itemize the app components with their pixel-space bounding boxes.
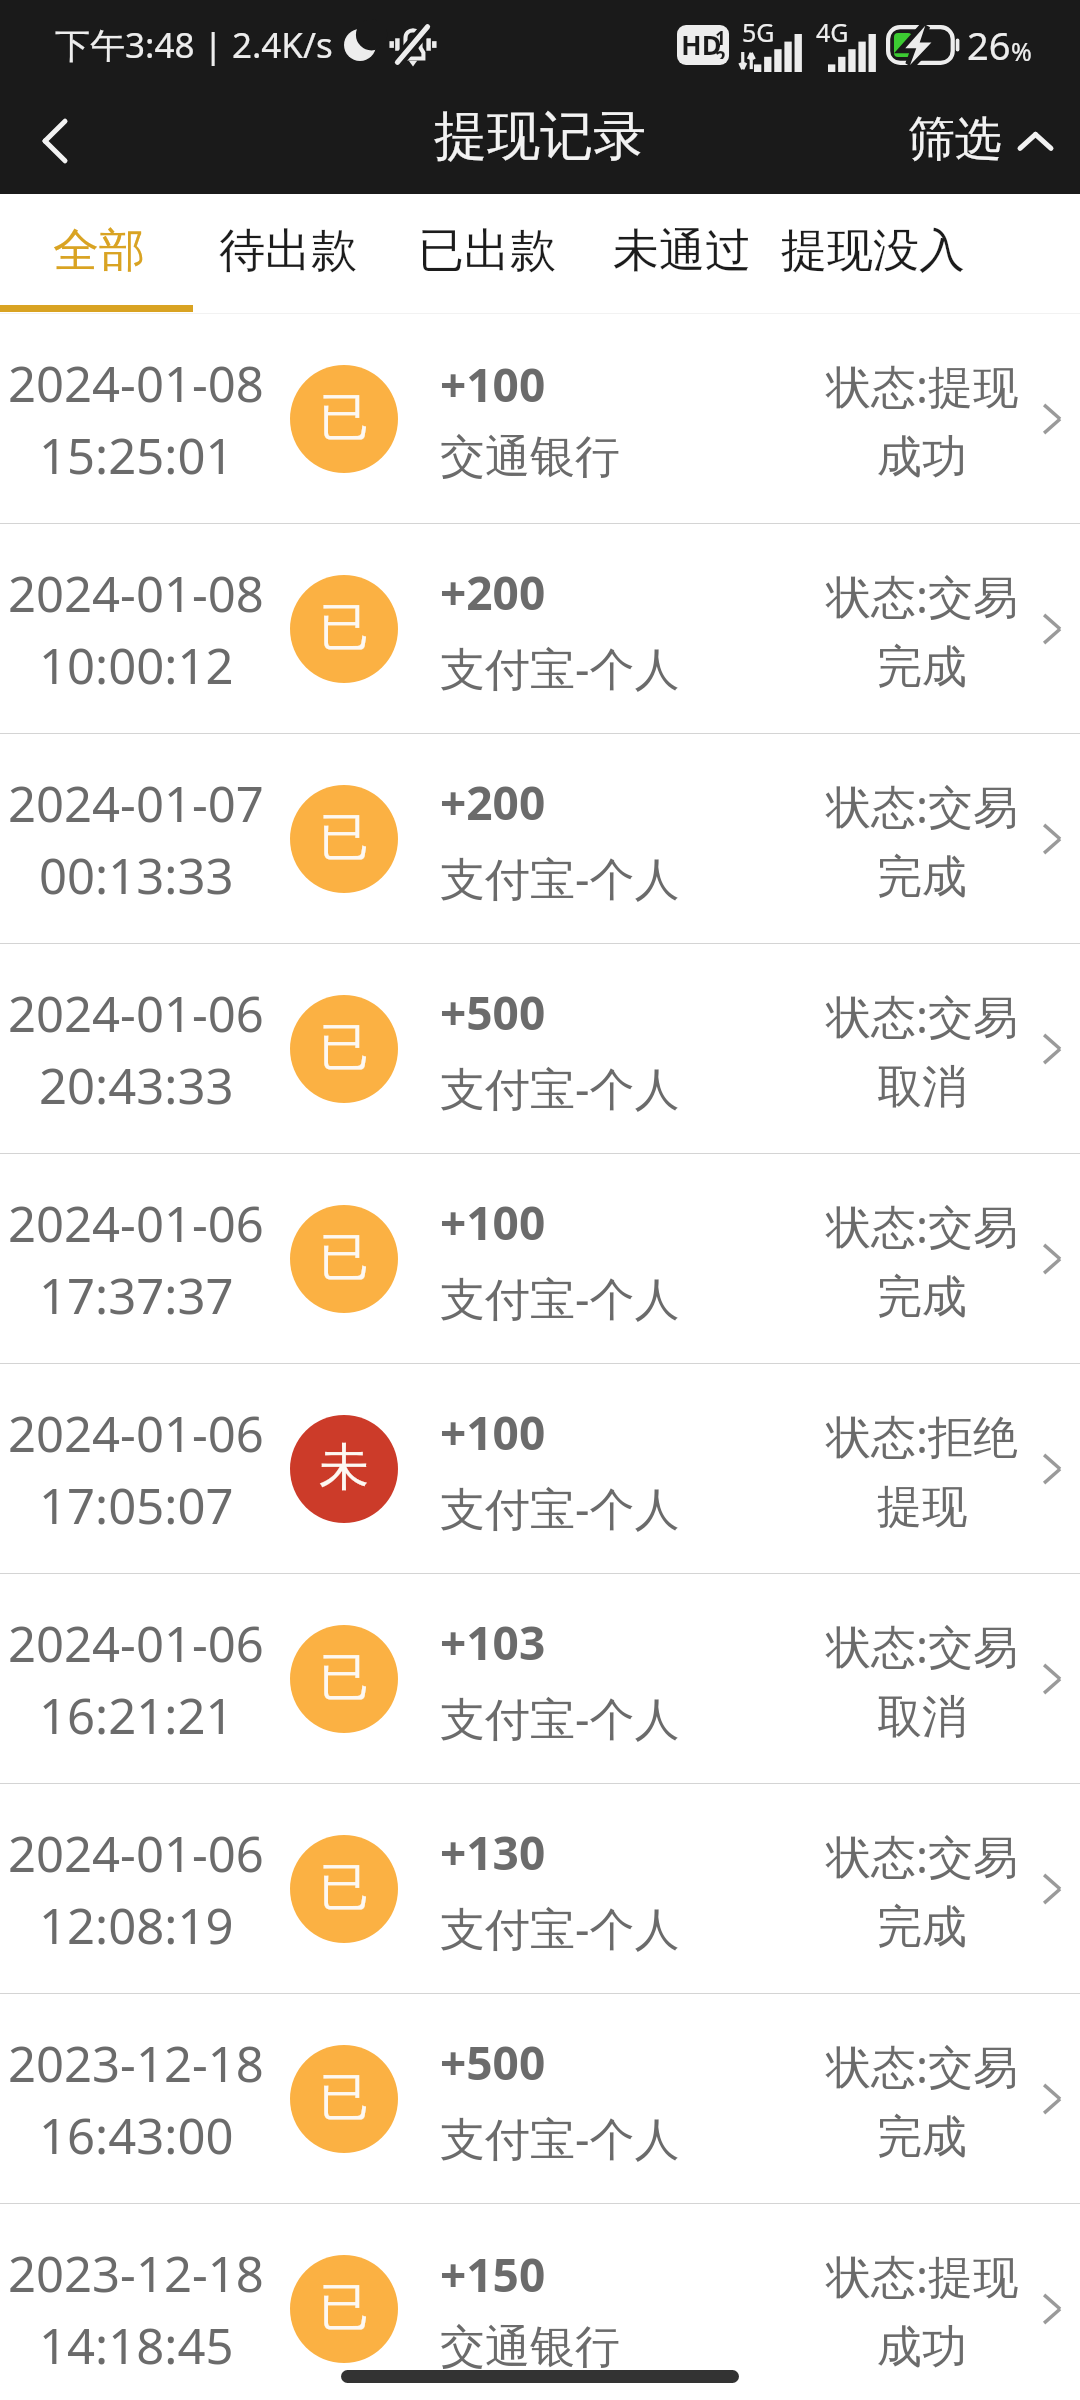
staticText: 状态:交易 (826, 985, 1019, 1046)
button[interactable]: 2024-01-06 (0, 1574, 1080, 1783)
staticText: 支付宝-个人 (440, 637, 680, 698)
staticText: 2024-01-06 (8, 1190, 264, 1257)
staticText: 2024-01-08 (8, 560, 264, 627)
staticText: 2024-01-08 (8, 350, 264, 417)
button[interactable]: 待出款 (201, 194, 375, 313)
staticText: 2 (715, 45, 726, 59)
staticText: 10:00:12 (39, 632, 234, 699)
staticText: +150 (440, 2243, 546, 2306)
staticText: 全部 (53, 222, 145, 280)
staticText: 完成 (877, 639, 967, 696)
staticText: +103 (440, 1611, 546, 1674)
staticText: % (1011, 34, 1032, 68)
button[interactable]: 2024-01-08 (0, 314, 1080, 523)
staticText: 完成 (877, 1269, 967, 1326)
staticText: +100 (440, 353, 546, 416)
staticText: 成功 (877, 2319, 967, 2376)
staticText: 未 (319, 1436, 369, 1499)
staticText: 未通过 (613, 222, 751, 280)
staticText: 5G (742, 15, 775, 49)
button[interactable]: 2023-12-18 (0, 2204, 1080, 2400)
staticText: 完成 (877, 849, 967, 906)
staticText: 已 (319, 2066, 369, 2129)
staticText: 交通银行 (440, 2319, 620, 2376)
staticText: 00:13:33 (39, 842, 234, 909)
button[interactable]: Back (0, 94, 110, 194)
staticText: +200 (440, 771, 546, 834)
staticText: 15:25:01 (39, 422, 234, 489)
staticText: 取消 (877, 1059, 967, 1116)
staticText: 交通银行 (440, 429, 620, 486)
staticText: 已 (319, 1016, 369, 1079)
staticText: 取消 (877, 1689, 967, 1746)
staticText: 2024-01-06 (8, 1820, 264, 1887)
staticText: 状态:交易 (826, 775, 1019, 836)
staticText: 已 (319, 806, 369, 869)
staticText: 17:37:37 (39, 1262, 234, 1329)
staticText: 14:18:45 (39, 2312, 234, 2379)
staticText: 支付宝-个人 (440, 847, 680, 908)
button[interactable]: 筛选 (908, 94, 1051, 194)
staticText: 20:43:33 (39, 1052, 234, 1119)
button[interactable]: 已出款 (400, 194, 574, 313)
staticText: 已 (319, 1856, 369, 1919)
staticText: 已 (319, 596, 369, 659)
staticText: 2023-12-18 (8, 2030, 264, 2097)
staticText: 下午3:48 | 2.4K/s (55, 21, 333, 69)
staticText: 2024-01-07 (8, 770, 264, 837)
button[interactable]: 2023-12-18 (0, 1994, 1080, 2203)
button[interactable]: 全部 (35, 194, 163, 313)
button[interactable]: 2024-01-07 (0, 734, 1080, 943)
staticText: 提现没入 (781, 222, 965, 280)
button[interactable]: 2024-01-06 (0, 1154, 1080, 1363)
staticText: 支付宝-个人 (440, 1477, 680, 1538)
staticText: 完成 (877, 2109, 967, 2166)
staticText: 已 (319, 2276, 369, 2339)
staticText: 支付宝-个人 (440, 1687, 680, 1748)
staticText: 26 (967, 19, 1011, 71)
staticText: 状态:拒绝 (826, 1405, 1019, 1466)
staticText: +500 (440, 981, 546, 1044)
staticText: 12:08:19 (39, 1892, 234, 1959)
staticText: 状态:交易 (826, 1615, 1019, 1676)
staticText: 17:05:07 (39, 1472, 234, 1539)
staticText: 状态:提现 (826, 355, 1019, 416)
staticText: 16:21:21 (39, 1682, 234, 1749)
staticText: 筛选 (908, 110, 1002, 169)
staticText: 2024-01-06 (8, 980, 264, 1047)
button[interactable]: 2024-01-08 (0, 524, 1080, 733)
staticText: 待出款 (219, 222, 357, 280)
button[interactable]: 未通过 (595, 194, 769, 313)
staticText: 4G (816, 15, 849, 49)
staticText: +130 (440, 1821, 546, 1884)
staticText: 状态:交易 (826, 565, 1019, 626)
staticText: 支付宝-个人 (440, 1057, 680, 1118)
staticText: 支付宝-个人 (440, 1267, 680, 1328)
staticText: 成功 (877, 429, 967, 486)
staticText: HD (681, 26, 722, 63)
staticText: 完成 (877, 1899, 967, 1956)
staticText: 已 (319, 1646, 369, 1709)
staticText: 已出款 (418, 222, 556, 280)
staticText: 已 (319, 1226, 369, 1289)
button[interactable]: 提现没入 (763, 194, 983, 313)
staticText: +100 (440, 1191, 546, 1254)
staticText: +100 (440, 1401, 546, 1464)
staticText: 2024-01-06 (8, 1400, 264, 1467)
staticText: 2023-12-18 (8, 2240, 264, 2307)
staticText: +200 (440, 561, 546, 624)
staticText: 状态:提现 (826, 2245, 1019, 2306)
staticText: 支付宝-个人 (440, 1897, 680, 1958)
staticText: +500 (440, 2031, 546, 2094)
staticText: 支付宝-个人 (440, 2107, 680, 2168)
button[interactable]: 2024-01-06 (0, 1784, 1080, 1993)
staticText: 已 (319, 386, 369, 449)
staticText: 状态:交易 (826, 1195, 1019, 1256)
staticText: 提现记录 (434, 103, 646, 170)
button[interactable]: 2024-01-06 (0, 944, 1080, 1153)
button[interactable]: 2024-01-06 (0, 1364, 1080, 1573)
staticText: 1 (715, 25, 726, 51)
staticText: 16:43:00 (39, 2102, 234, 2169)
staticText: 状态:交易 (826, 1825, 1019, 1886)
staticText: 状态:交易 (826, 2035, 1019, 2096)
